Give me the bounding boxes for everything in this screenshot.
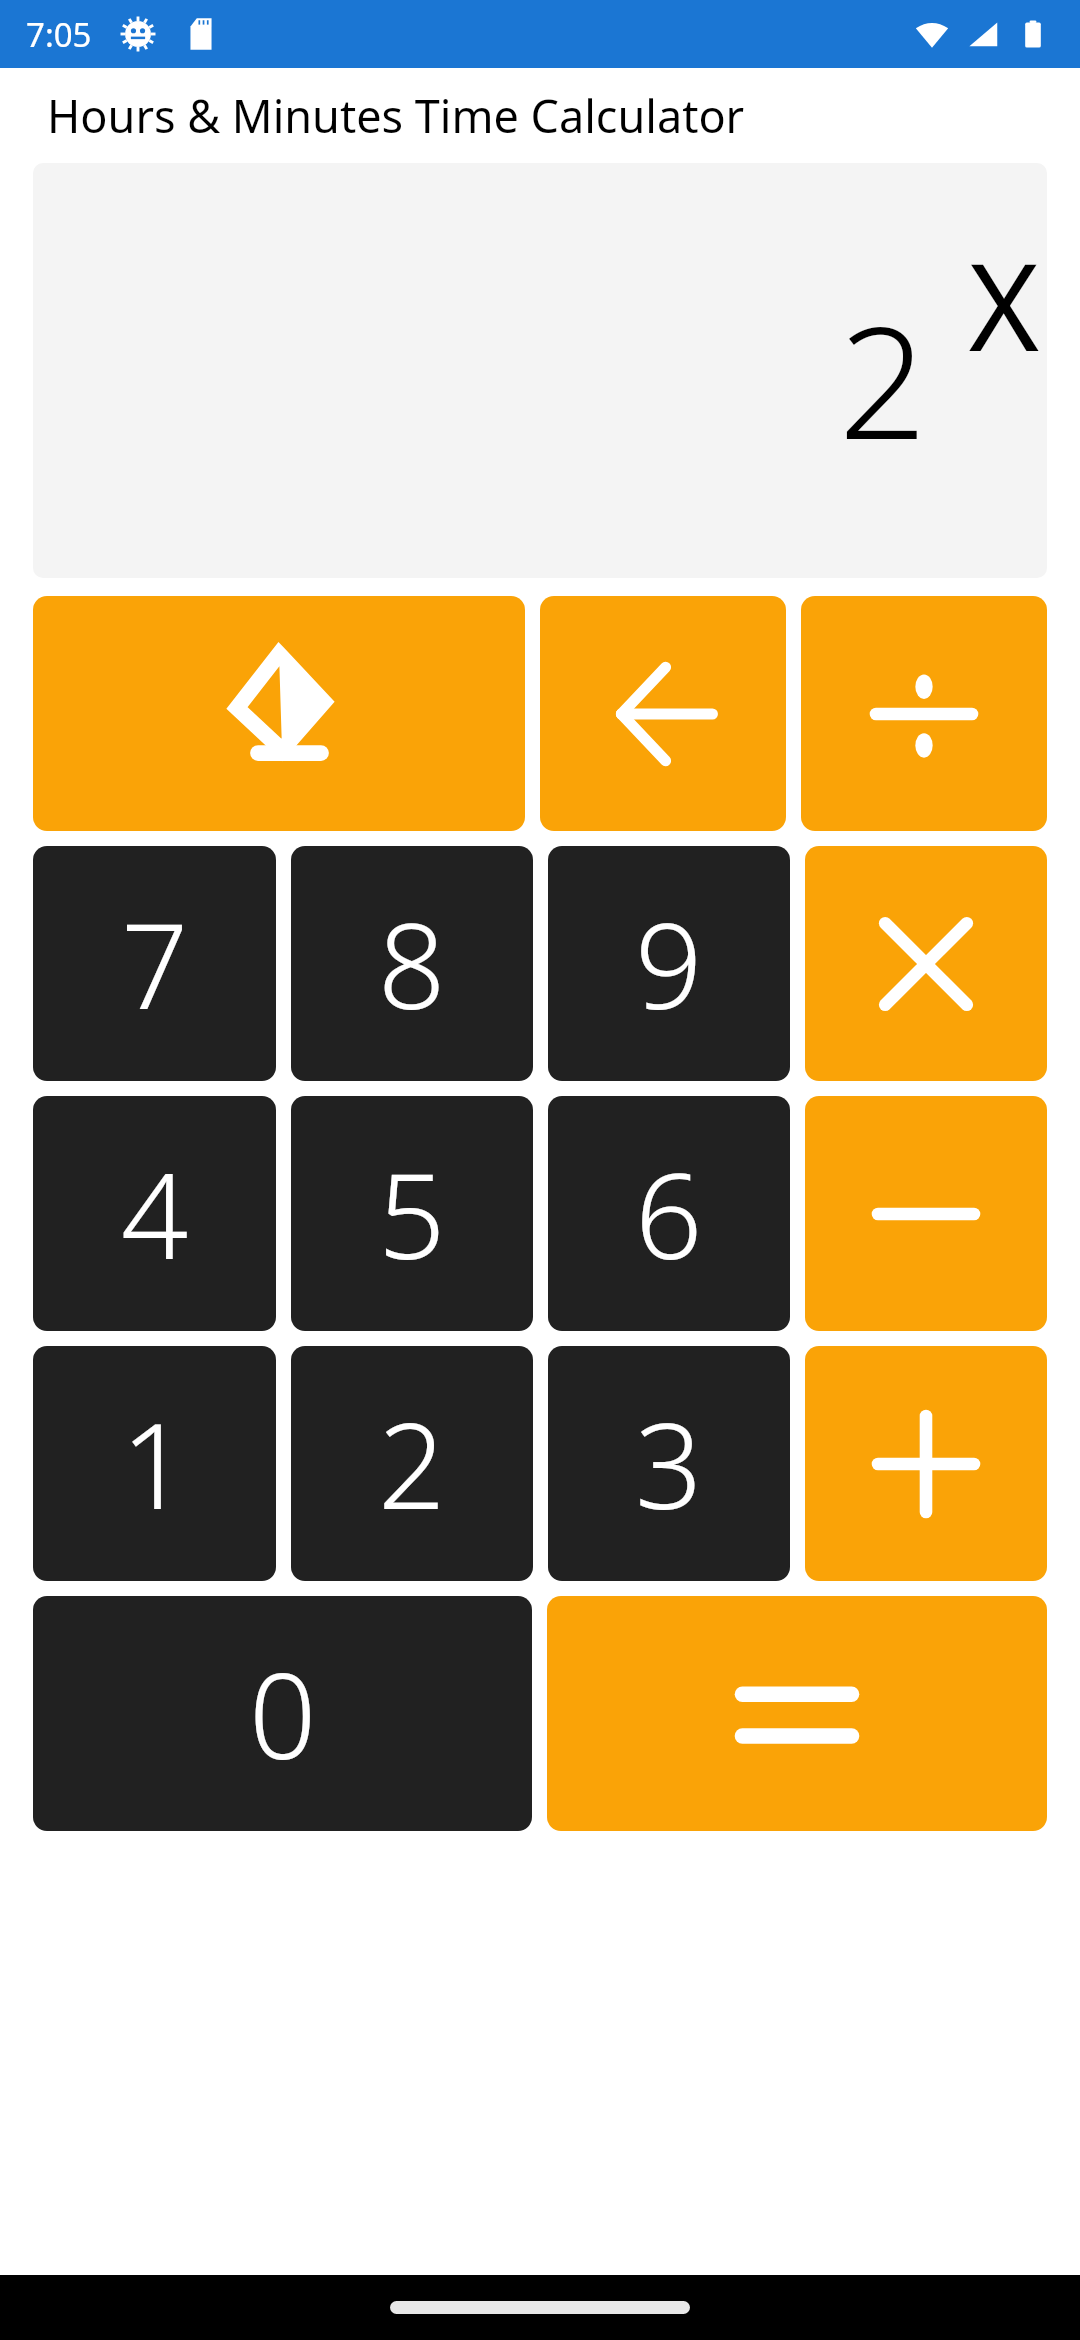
button[interactable]: 7 bbox=[33, 846, 276, 1081]
button[interactable]: Operator bbox=[805, 846, 1047, 1081]
staticText: 0 bbox=[249, 1633, 317, 1794]
button[interactable]: Operator bbox=[805, 1346, 1047, 1581]
button[interactable]: 9 bbox=[548, 846, 790, 1081]
button[interactable]: 3 bbox=[548, 1346, 790, 1581]
button[interactable]: 8 bbox=[291, 846, 533, 1081]
button[interactable]: Clear all bbox=[33, 596, 525, 831]
staticText: 3 bbox=[635, 1383, 703, 1544]
staticText: Hours & Minutes Time Calculator bbox=[47, 85, 745, 146]
staticText: X bbox=[968, 223, 1039, 386]
button[interactable]: Operator bbox=[805, 1096, 1047, 1331]
staticText: 8 bbox=[378, 883, 446, 1044]
staticText: 5 bbox=[378, 1133, 446, 1294]
staticText: 7 bbox=[121, 883, 189, 1044]
button[interactable]: Equals bbox=[547, 1596, 1047, 1831]
button[interactable]: 4 bbox=[33, 1096, 276, 1331]
button[interactable]: 5 bbox=[291, 1096, 533, 1331]
button[interactable]: 0 bbox=[33, 1596, 532, 1831]
staticText: 4 bbox=[121, 1133, 189, 1294]
button[interactable]: Divide bbox=[801, 596, 1047, 831]
staticText: 9 bbox=[635, 883, 703, 1044]
staticText: 2 bbox=[378, 1383, 446, 1544]
staticText: 7:05 bbox=[26, 12, 92, 57]
button[interactable]: 2 bbox=[291, 1346, 533, 1581]
staticText: 2 bbox=[838, 273, 927, 484]
staticText: 6 bbox=[635, 1133, 703, 1294]
button[interactable]: 1 bbox=[33, 1346, 276, 1581]
button[interactable]: 6 bbox=[548, 1096, 790, 1331]
staticText: 1 bbox=[121, 1383, 189, 1544]
button[interactable]: Backspace bbox=[540, 596, 786, 831]
